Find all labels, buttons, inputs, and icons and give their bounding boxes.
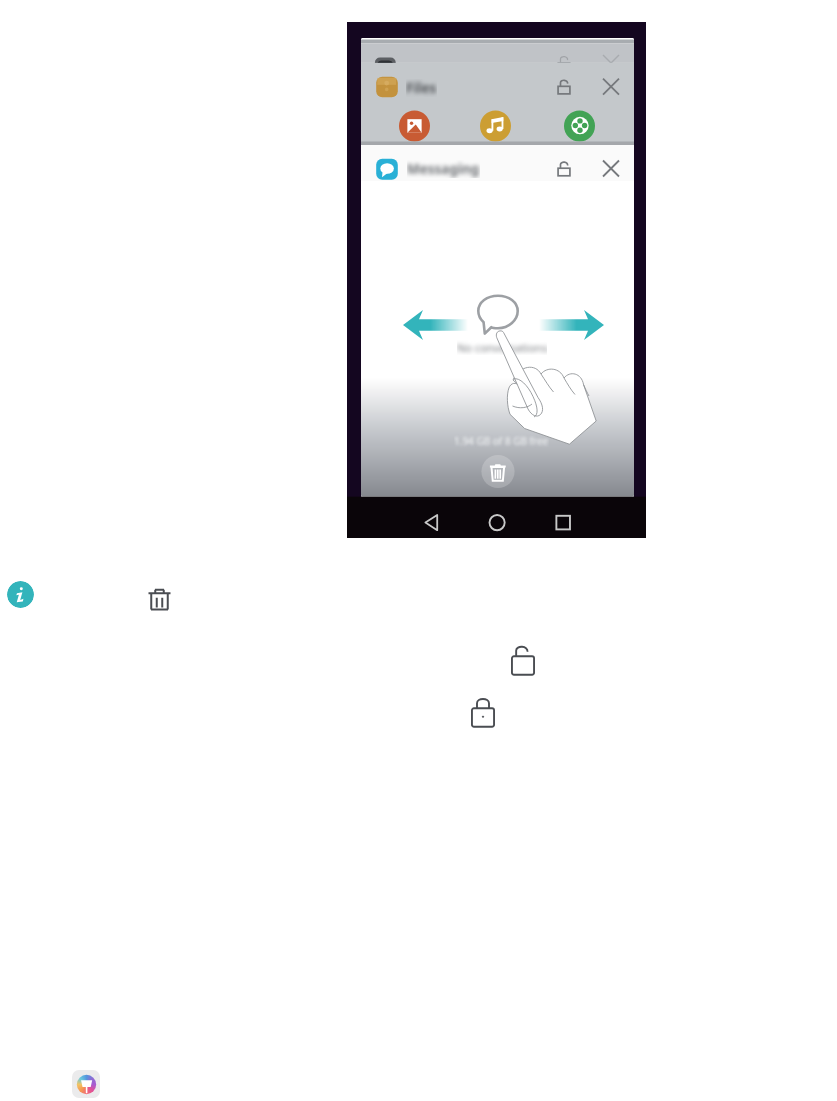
staticText: Files [406, 79, 437, 97]
button[interactable]: Delete [147, 587, 172, 612]
button[interactable]: Information [7, 581, 34, 608]
button[interactable]: Unlock [511, 645, 535, 675]
staticText: Messaging [407, 160, 480, 178]
button[interactable]: Lock [471, 697, 495, 727]
staticText: No conversations [457, 340, 547, 355]
staticText: 1.94 GB of 8 GB free [454, 434, 549, 448]
button[interactable]: App shortcut [72, 1070, 100, 1098]
